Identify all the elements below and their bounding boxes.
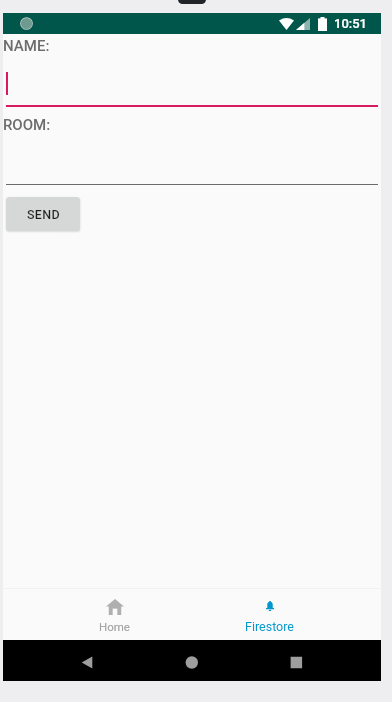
button[interactable]: Home <box>37 589 192 640</box>
other: App notification <box>20 17 33 30</box>
staticText: SEND <box>27 207 60 222</box>
button[interactable]: Firestore notifications <box>192 589 347 640</box>
staticText: ROOM: <box>3 116 51 134</box>
button[interactable]: SEND <box>6 197 80 231</box>
staticText: 10:51 <box>334 16 368 31</box>
staticText: Firestore <box>245 619 294 634</box>
other: Firestore notifications <box>266 601 274 611</box>
staticText: NAME: <box>3 37 50 55</box>
staticText: Home <box>99 620 130 633</box>
